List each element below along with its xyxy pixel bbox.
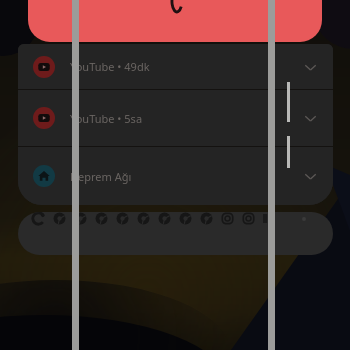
button[interactable] <box>28 0 322 42</box>
button[interactable]: YouTube • 5sa <box>18 90 333 146</box>
staticText: YouTube • 5sa <box>70 111 299 126</box>
button[interactable]: Expand notification <box>299 107 321 129</box>
button[interactable]: More notifications <box>18 212 333 255</box>
button[interactable]: Expand notification <box>299 56 321 78</box>
staticText: YouTube • 49dk <box>70 59 299 74</box>
staticText: Deprem Ağı <box>70 169 299 184</box>
button[interactable]: Expand notification <box>299 165 321 187</box>
button[interactable]: Deprem Ağı <box>18 147 333 205</box>
button[interactable]: YouTube • 49dk <box>18 44 333 89</box>
